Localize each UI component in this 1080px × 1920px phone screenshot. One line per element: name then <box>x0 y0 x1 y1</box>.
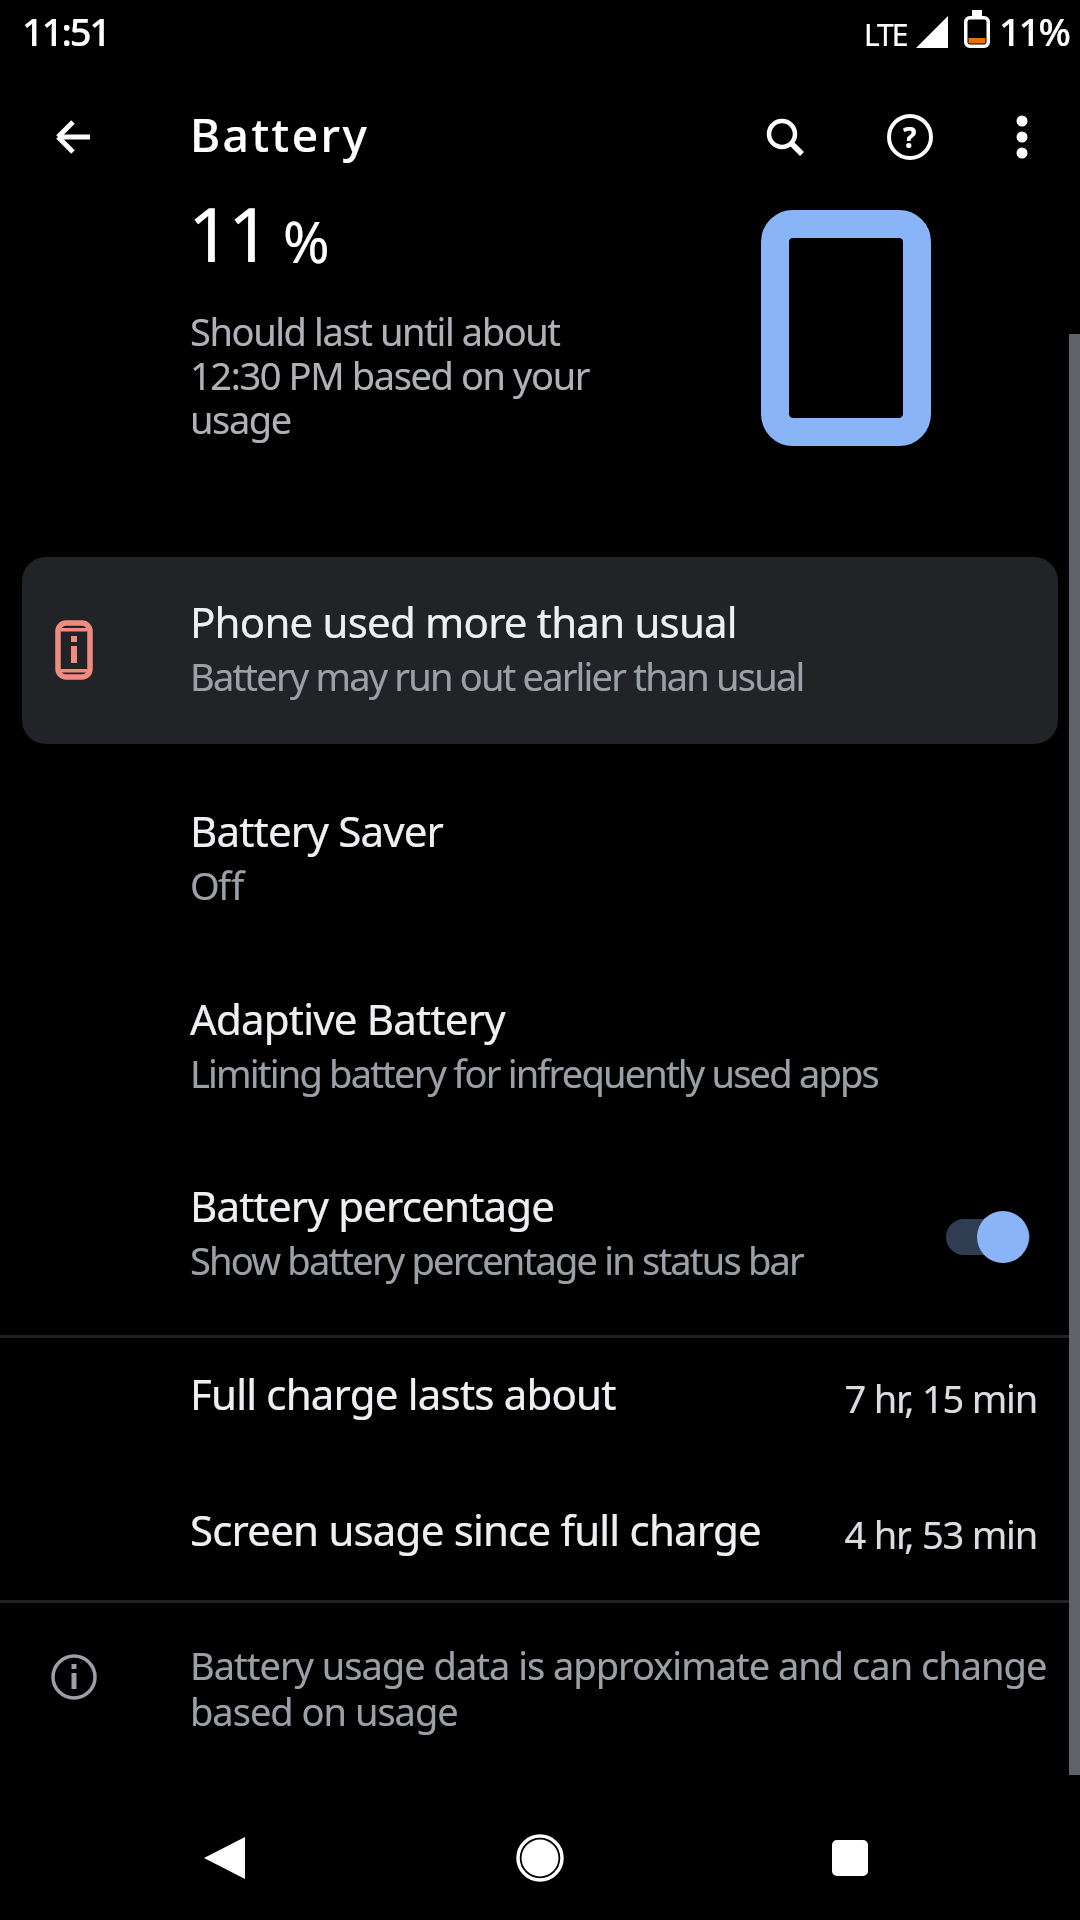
staticText: 11:51 <box>22 5 110 57</box>
staticText: Limiting battery for infrequently used a… <box>190 1047 878 1099</box>
button[interactable] <box>185 1818 265 1898</box>
staticText: 7 hr, 15 min <box>0 1372 1037 1424</box>
button[interactable] <box>44 107 104 167</box>
staticText: ? <box>903 118 917 156</box>
button[interactable] <box>755 107 815 167</box>
button[interactable]: Battery Saver <box>0 774 1080 939</box>
staticText: LTE <box>864 14 907 55</box>
button[interactable] <box>977 1211 1029 1263</box>
button[interactable]: Screen usage since full charge <box>0 1489 1080 1626</box>
staticText: 4 hr, 53 min <box>0 1508 1037 1560</box>
button[interactable]: Battery percentage <box>0 1149 1080 1314</box>
button[interactable]: Phone used more than usual <box>22 557 1058 744</box>
staticText: Full charge lasts about <box>190 1365 616 1422</box>
staticText: Battery percentage <box>190 1177 555 1234</box>
staticText: Screen usage since full charge <box>190 1501 761 1558</box>
button[interactable]: Full charge lasts about <box>0 1352 1080 1489</box>
button[interactable] <box>992 107 1052 167</box>
button[interactable]: ? <box>880 107 940 167</box>
staticText: Battery Saver <box>190 802 444 859</box>
staticText: Off <box>190 859 243 911</box>
staticText: Adaptive Battery <box>190 990 505 1047</box>
staticText: Battery usage data is approximate and ca… <box>190 1639 1047 1737</box>
staticText: % <box>283 203 330 279</box>
staticText: Battery may run out earlier than usual <box>190 650 804 702</box>
button[interactable] <box>810 1818 890 1898</box>
staticText: Battery <box>190 103 370 166</box>
button[interactable]: Adaptive Battery <box>0 962 1080 1127</box>
staticText: 11 <box>188 182 268 284</box>
staticText: 11% <box>999 5 1069 57</box>
staticText: Should last until about 12:30 PM based o… <box>190 305 590 445</box>
button[interactable] <box>500 1818 580 1898</box>
staticText: Show battery percentage in status bar <box>190 1234 803 1286</box>
staticText: Phone used more than usual <box>190 593 737 650</box>
